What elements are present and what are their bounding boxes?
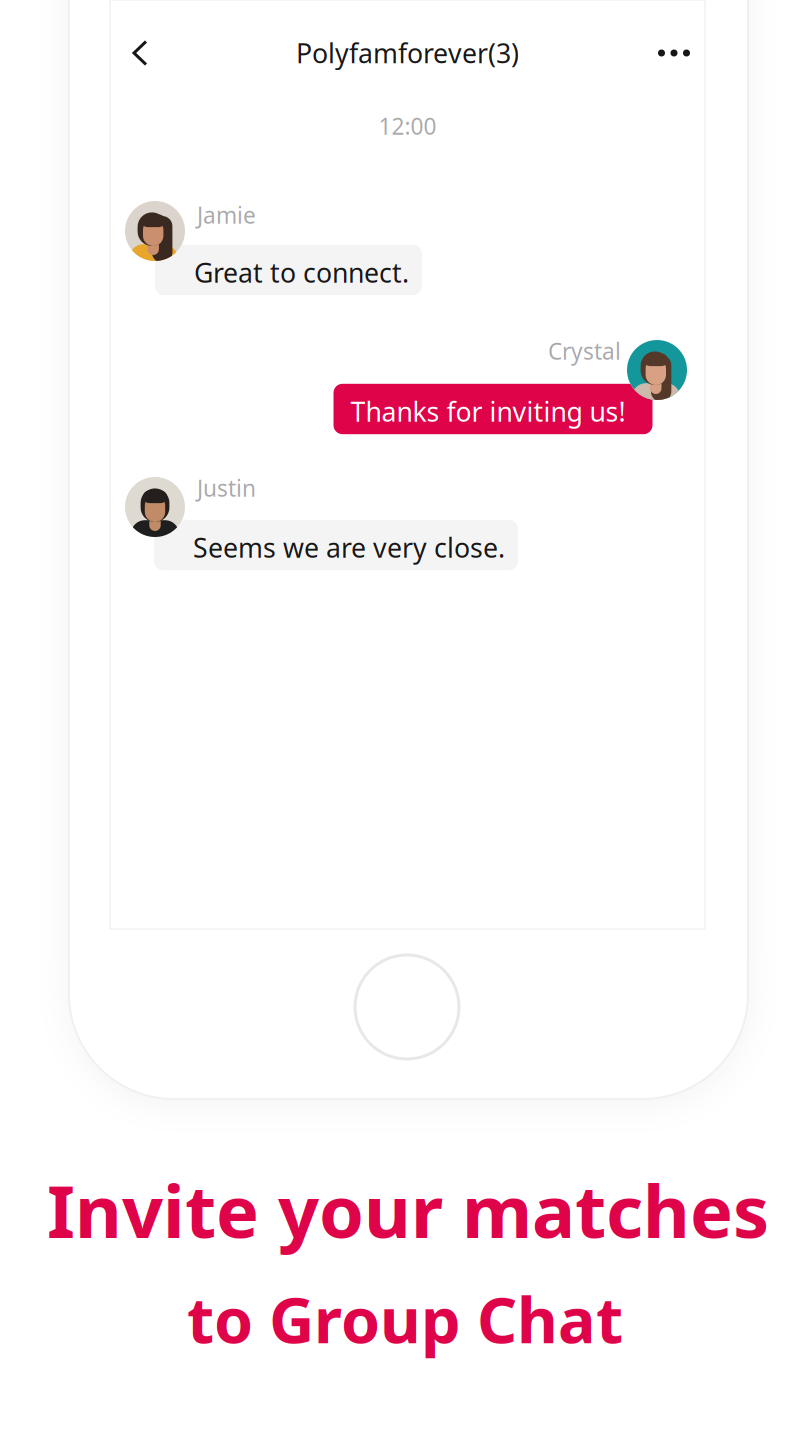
staticText: Justin [197,473,256,503]
staticText: Invite your matches [47,1162,769,1258]
staticText: Thanks for inviting us! [350,394,625,429]
button[interactable]: More options [645,27,703,79]
staticText: Polyfamforever(3) [296,35,519,71]
staticText: Great to connect. [194,255,409,290]
staticText: to Group Chat [187,1277,623,1361]
button[interactable]: Back [112,25,168,81]
staticText: Jamie [197,200,256,230]
staticText: Crystal [548,336,621,366]
staticText: Seems we are very close. [193,530,505,565]
staticText: 12:00 [378,111,436,141]
